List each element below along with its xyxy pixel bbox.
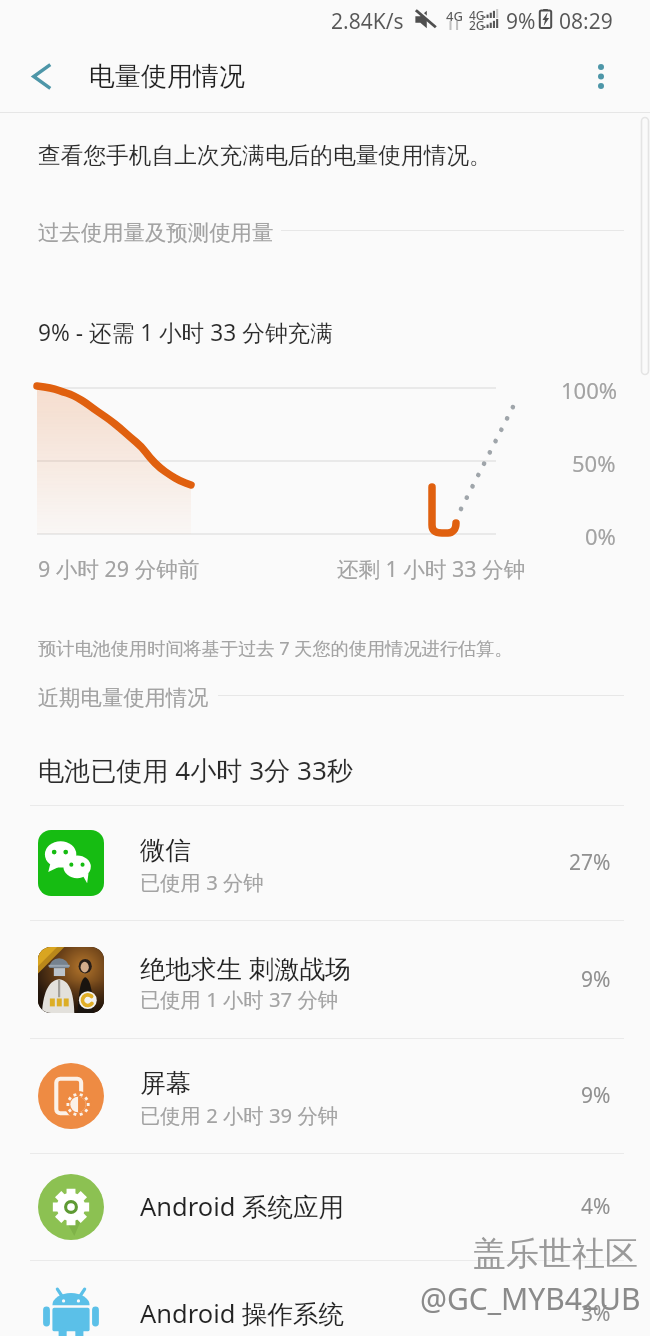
staticText: 预计电池使用时间将基于过去 7 天您的使用情况进行估算。: [38, 636, 513, 661]
button[interactable]: Android 操作系统: [0, 1260, 650, 1336]
staticText: 绝地求生 刺激战场: [140, 951, 351, 986]
staticText: 9% - 还需 1 小时 33 分钟充满: [38, 317, 333, 348]
staticText: 4G: [469, 7, 485, 23]
staticText: 近期电量使用情况: [38, 684, 209, 711]
button[interactable]: 绝地求生 刺激战场: [0, 920, 650, 1038]
staticText: 屏幕: [140, 1067, 191, 1099]
button[interactable]: Back: [18, 52, 66, 100]
staticText: 2.84K/s: [331, 7, 404, 36]
staticText: 查看您手机自上次充满电后的电量使用情况。: [38, 141, 492, 170]
staticText: 2G: [469, 17, 485, 33]
button[interactable]: More options: [577, 52, 625, 100]
staticText: 已使用 1 小时 37 分钟: [140, 985, 339, 1013]
staticText: 100%: [561, 375, 618, 405]
staticText: 微信: [140, 834, 191, 866]
staticText: 9 小时 29 分钟前: [38, 554, 200, 583]
button[interactable]: 微信: [0, 805, 650, 920]
staticText: 已使用 3 分钟: [140, 868, 264, 896]
staticText: 4%: [581, 1192, 611, 1221]
button[interactable]: 屏幕: [0, 1038, 650, 1153]
staticText: 3%: [581, 1299, 611, 1328]
staticText: Android 系统应用: [140, 1189, 345, 1224]
staticText: 9%: [581, 965, 611, 994]
staticText: 27%: [569, 848, 611, 877]
staticText: 0%: [585, 521, 616, 551]
button[interactable]: Android 系统应用: [0, 1153, 650, 1260]
staticText: 4G: [446, 7, 463, 25]
staticText: 50%: [572, 448, 616, 478]
staticText: 9%: [581, 1081, 611, 1110]
staticText: 盖乐世社区: [473, 1233, 638, 1275]
staticText: 电池已使用 4小时 3分 33秒: [38, 752, 353, 788]
staticText: 9%: [506, 7, 536, 36]
staticText: 还剩 1 小时 33 分钟: [337, 554, 526, 583]
staticText: 08:29: [559, 7, 613, 36]
staticText: 电量使用情况: [89, 60, 245, 93]
staticText: 已使用 2 小时 39 分钟: [140, 1101, 339, 1129]
staticText: @GC_MYB42UB: [420, 1278, 641, 1319]
staticText: 过去使用量及预测使用量: [38, 219, 274, 246]
staticText: Android 操作系统: [140, 1296, 345, 1331]
